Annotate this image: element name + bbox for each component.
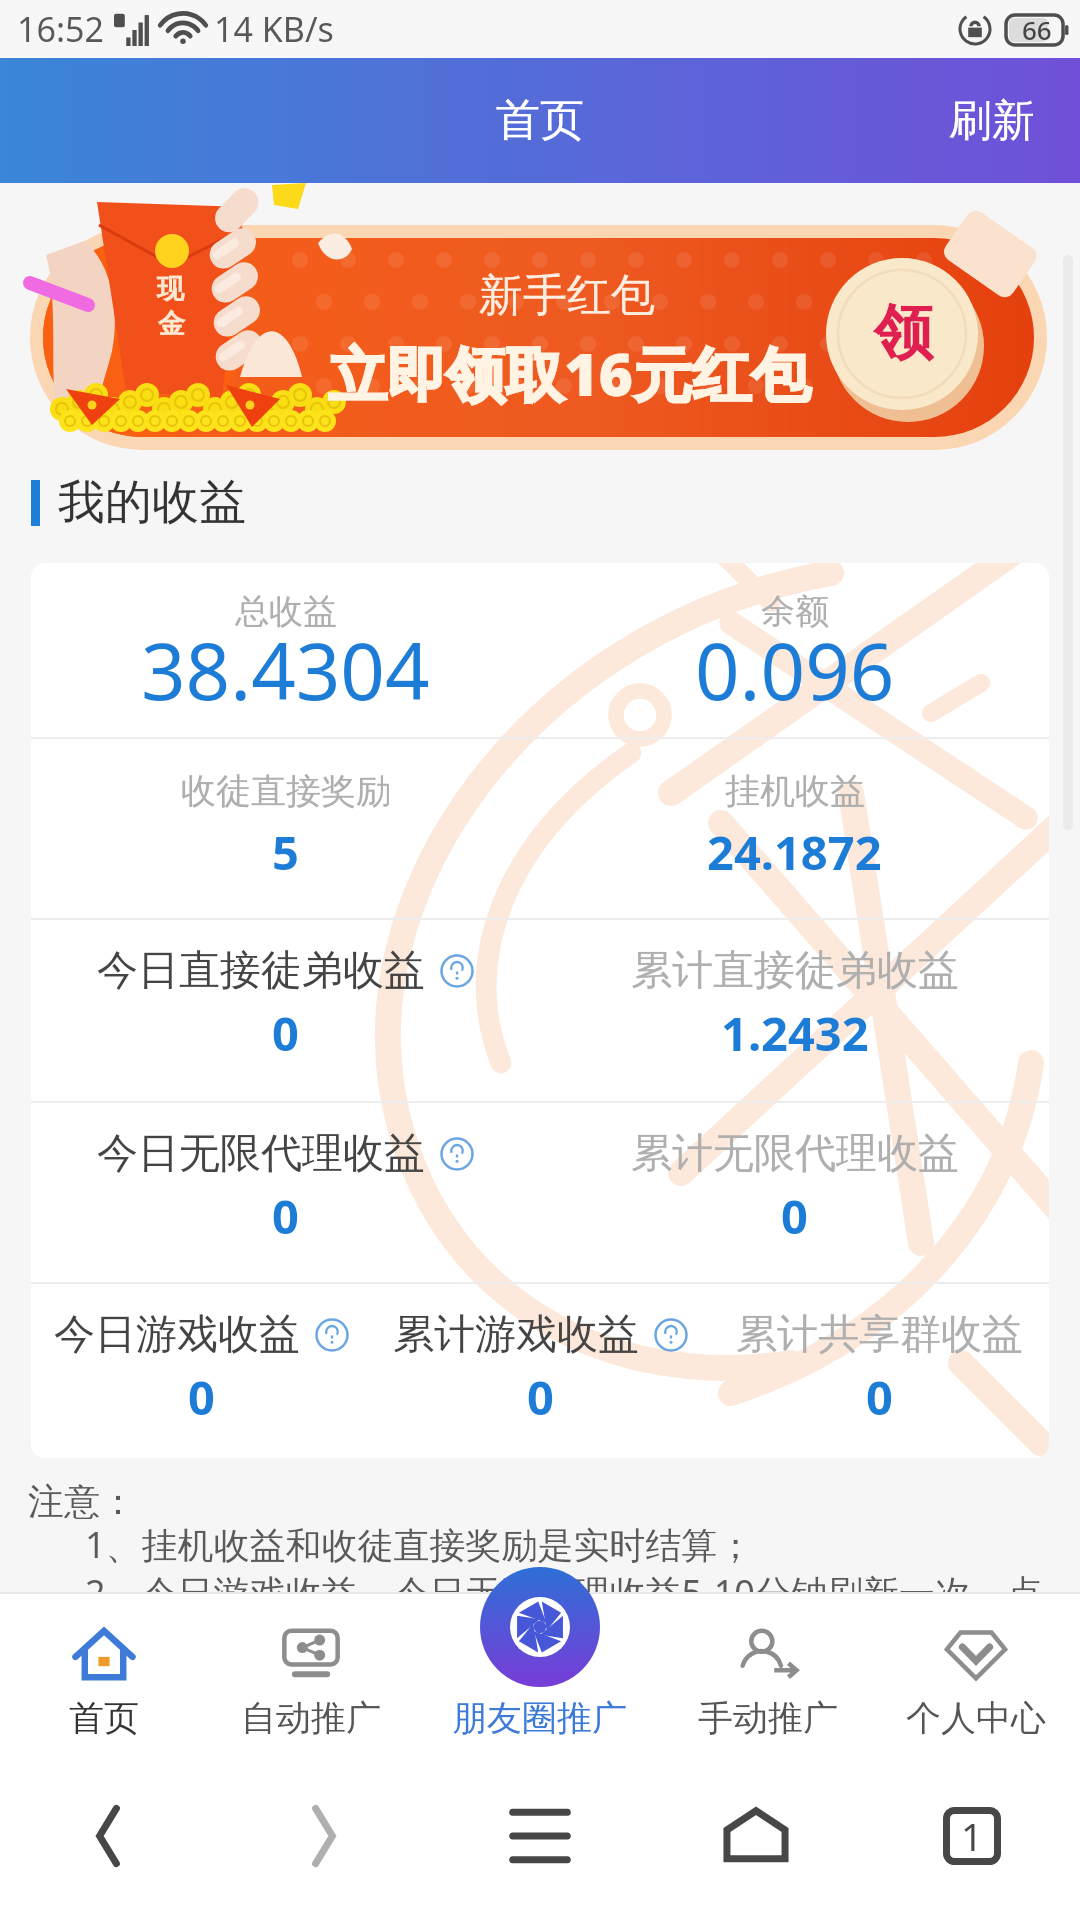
staticText: 累计共享群收益: [736, 1309, 1023, 1361]
staticText: 余额: [761, 590, 829, 633]
staticText: 0: [188, 1365, 215, 1429]
staticText: 今日无限代理收益: [97, 1128, 425, 1180]
button[interactable]: Forward: [309, 1806, 339, 1866]
staticText: 66: [1022, 12, 1052, 47]
staticText: 今日游戏收益: [54, 1309, 300, 1361]
staticText: 0: [272, 1001, 299, 1065]
button[interactable]: 累计直接徒弟收益: [540, 920, 1049, 1101]
staticText: 总收益: [235, 590, 337, 633]
button[interactable]: Back: [93, 1806, 123, 1866]
staticText: 首页: [496, 93, 584, 148]
button[interactable]: 个人中心: [872, 1592, 1080, 1752]
button[interactable]: Menu: [511, 1807, 569, 1865]
staticText: 累计游戏收益: [393, 1309, 639, 1361]
staticText: 2、今日游戏收益、今日无限代理收益5-10分钟刷新一次，点: [85, 1568, 1043, 1592]
staticText: 挂机收益: [725, 769, 865, 813]
button[interactable]: 累计共享群收益: [710, 1284, 1049, 1458]
staticText: 24.1872: [707, 820, 882, 884]
button[interactable]: 朋友圈推广: [452, 1696, 627, 1740]
button[interactable]: 今日无限代理收益: [31, 1103, 540, 1282]
button[interactable]: 收徒直接奖励: [31, 739, 540, 918]
button[interactable]: 总收益: [31, 563, 540, 737]
button[interactable]: Recents: [943, 1807, 1001, 1865]
button[interactable]: 首页: [470, 83, 610, 158]
staticText: 0.096: [695, 617, 895, 723]
staticText: 今日直接徒弟收益: [97, 945, 425, 997]
button[interactable]: 今日游戏收益: [31, 1284, 371, 1458]
staticText: 朋友圈推广: [452, 1696, 627, 1740]
button[interactable]: 挂机收益: [540, 739, 1049, 918]
button[interactable]: 手动推广: [664, 1592, 872, 1752]
staticText: 1、挂机收益和收徒直接奖励是实时结算；: [85, 1520, 754, 1569]
button[interactable]: 余额: [540, 563, 1049, 737]
staticText: 0: [781, 1184, 808, 1248]
staticText: 5: [272, 820, 299, 884]
staticText: 我的收益: [58, 473, 246, 532]
staticText: 累计无限代理收益: [631, 1128, 959, 1180]
staticText: 16:52: [17, 6, 104, 52]
button[interactable]: 刷新: [919, 80, 1080, 162]
staticText: 注意：: [28, 1479, 136, 1524]
staticText: 38.4304: [141, 617, 430, 723]
staticText: 手动推广: [698, 1696, 838, 1740]
staticText: 刷新: [949, 94, 1035, 148]
staticText: 首页: [69, 1696, 139, 1740]
staticText: 自动推广: [241, 1696, 381, 1740]
staticText: 个人中心: [906, 1696, 1046, 1740]
button[interactable]: 自动推广: [207, 1592, 415, 1752]
staticText: 14 KB/s: [214, 6, 334, 52]
button[interactable]: 首页: [0, 1592, 207, 1752]
button[interactable]: 今日直接徒弟收益: [31, 920, 540, 1101]
button[interactable]: 朋友圈推广: [480, 1567, 600, 1687]
staticText: 新手红包: [479, 268, 655, 323]
staticText: 0: [272, 1184, 299, 1248]
staticText: 1: [961, 1810, 983, 1862]
staticText: 1.2432: [721, 1001, 869, 1065]
button[interactable]: Home: [723, 1806, 789, 1866]
button[interactable]: 累计无限代理收益: [540, 1103, 1049, 1282]
staticText: 现: [157, 272, 184, 306]
staticText: 0: [527, 1365, 554, 1429]
staticText: 0: [866, 1365, 893, 1429]
button[interactable]: 累计游戏收益: [371, 1284, 710, 1458]
button[interactable]: 新手红包: [0, 183, 1080, 468]
staticText: 立即领取16元红包: [328, 333, 811, 414]
staticText: 累计直接徒弟收益: [631, 945, 959, 997]
staticText: 收徒直接奖励: [181, 769, 391, 813]
staticText: 领: [874, 296, 933, 370]
staticText: 金: [158, 307, 185, 341]
